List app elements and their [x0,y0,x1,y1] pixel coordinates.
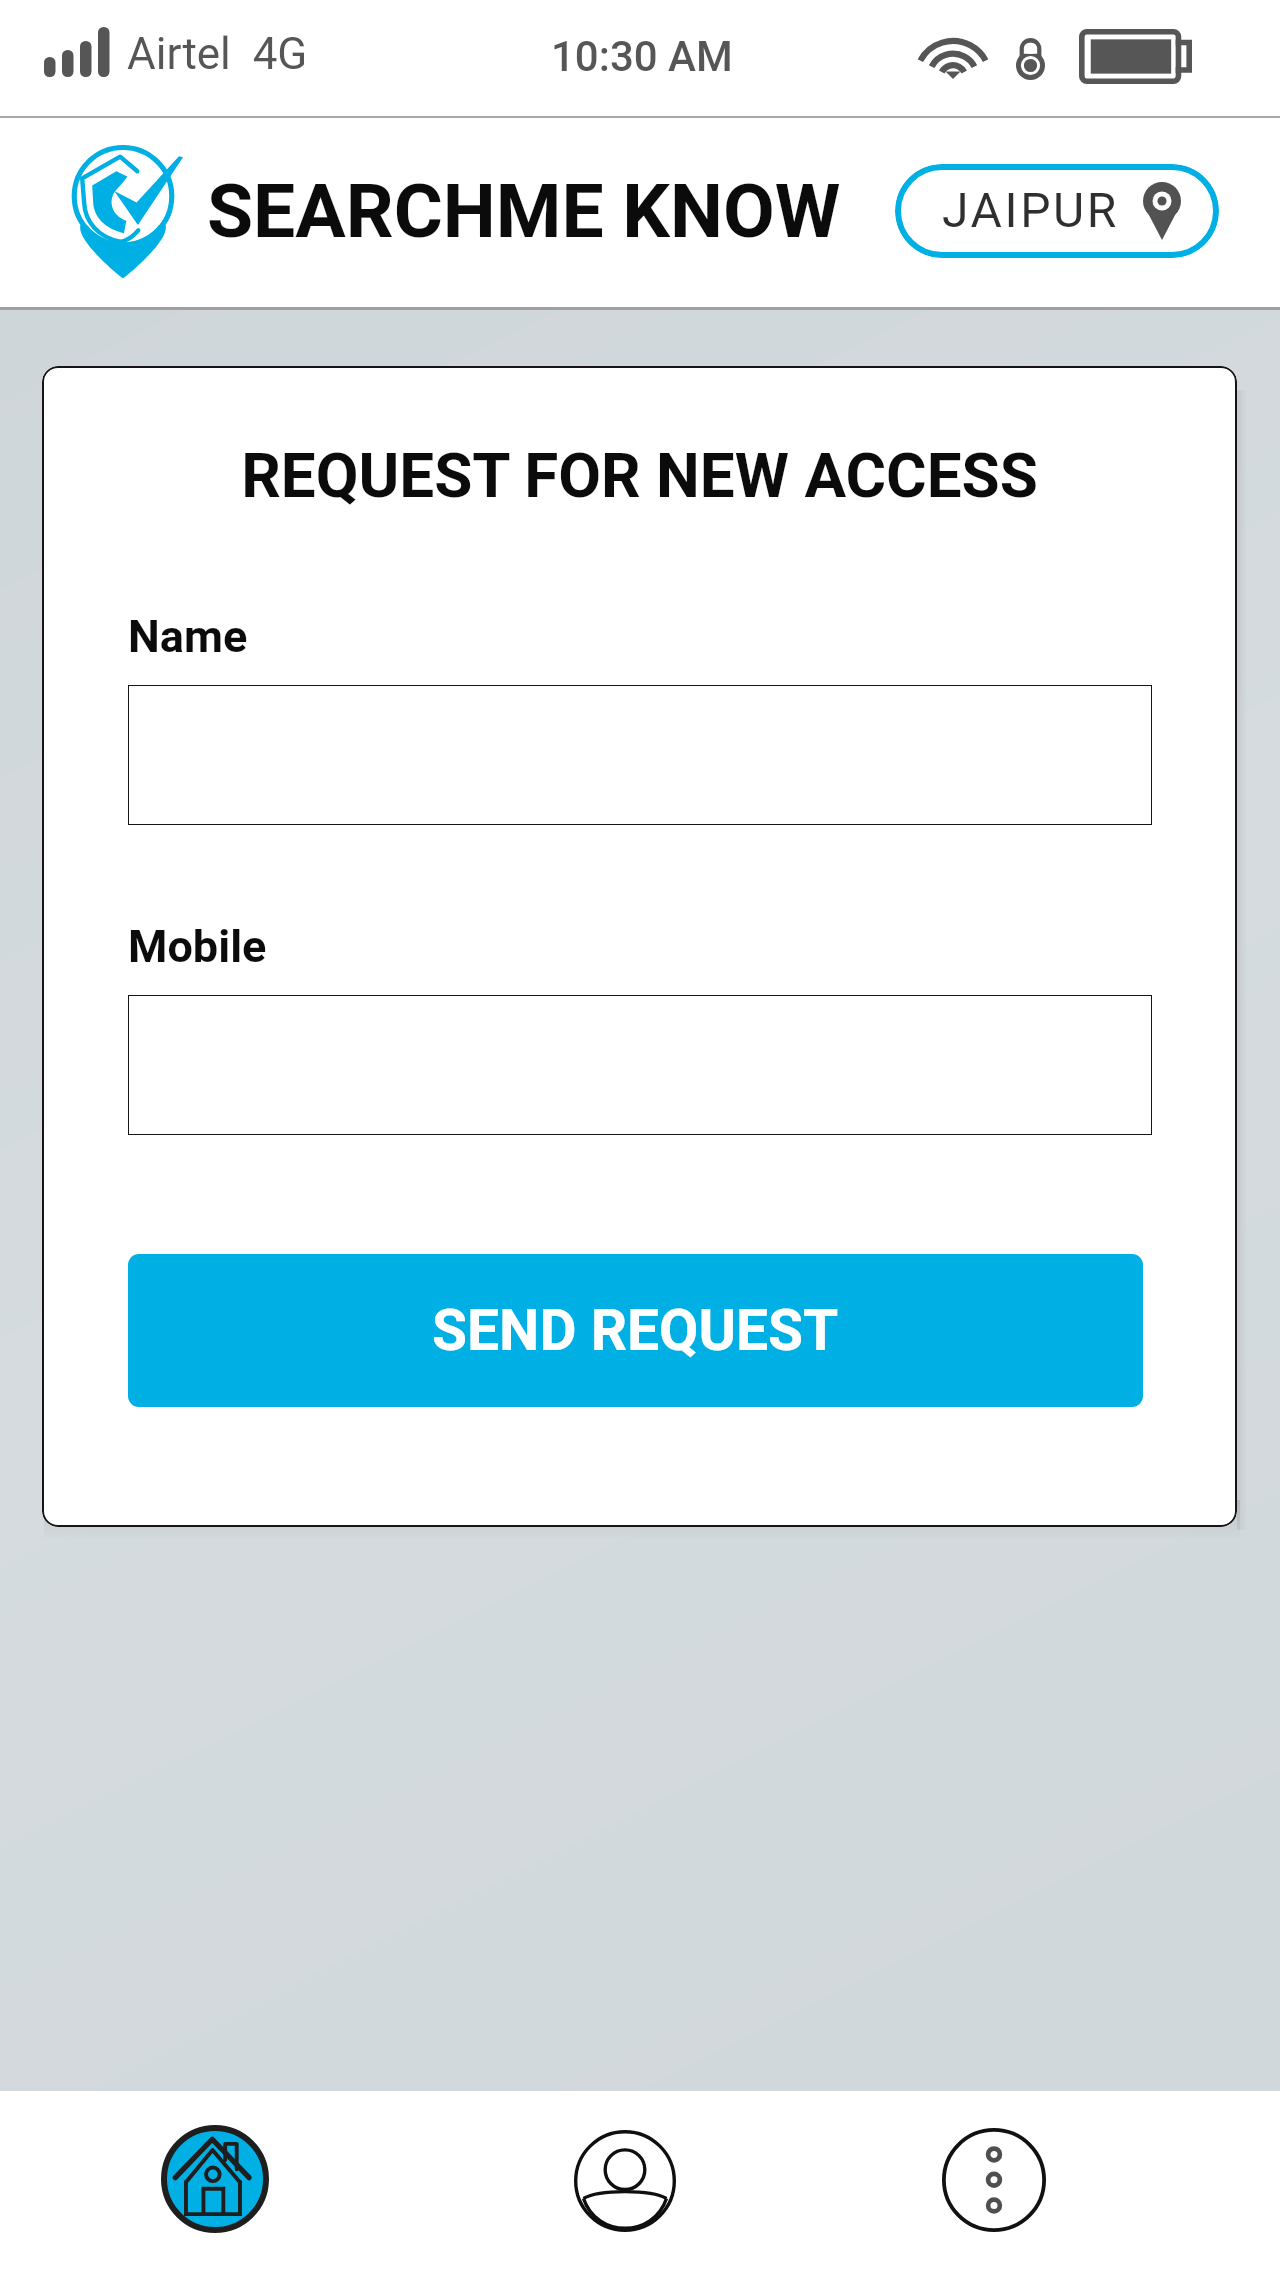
staticText: 10:30 AM [551,32,733,81]
button[interactable] [128,685,1152,825]
staticText: Mobile [128,920,267,973]
button[interactable]: More options [937,2123,1050,2236]
staticText: JAIPUR [942,182,1119,238]
button[interactable]: JAIPUR [895,164,1219,258]
button[interactable] [128,995,1152,1135]
button[interactable]: Home [157,2121,273,2237]
button[interactable]: Profile [568,2124,681,2237]
staticText: REQUEST FOR NEW ACCESS [42,439,1237,512]
button[interactable]: SEND REQUEST [128,1254,1143,1407]
staticText: Name [128,610,248,663]
staticText: SEARCHME KNOW [207,167,841,255]
staticText: Airtel 4G [127,28,308,80]
staticText: SEND REQUEST [432,1297,839,1364]
